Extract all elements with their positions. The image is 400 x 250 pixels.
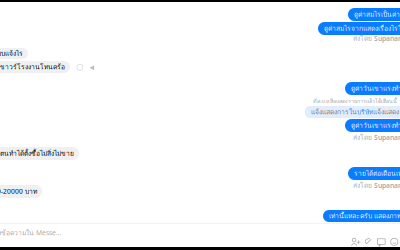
button[interactable]: ทำไปต่อตนทำได้ตั้งซื้อไม่สิ่งไม่ขาย — [0, 147, 79, 160]
button[interactable]: Reply — [87, 64, 95, 71]
staticText: ส่งข้อความใน Messenger… — [0, 228, 64, 238]
staticText: แจ้งแสดง — [373, 107, 399, 117]
staticText: Supanan Watta — [374, 181, 400, 190]
button[interactable]: 7000-20000 บาท — [0, 185, 42, 198]
staticText: ทำไปต่อตนทำได้ตั้งซื้อไม่สิ่งไม่ขาย — [0, 148, 74, 159]
staticText: 7000-20000 บาท — [0, 186, 37, 197]
staticText: ส่งโดย — [353, 132, 372, 143]
button[interactable]: Emoji — [389, 237, 399, 247]
button[interactable]: ดูค่าวันเขาแรงทำขอ — [345, 119, 400, 132]
button[interactable]: Add person — [350, 237, 360, 247]
button[interactable]: Attach file — [363, 237, 373, 247]
staticText: ดูค่าวันเขาแรงทำขอ — [351, 83, 400, 94]
button[interactable]: วันนี้แลกสาขาวร์โรงงานโทนคร้อ — [0, 61, 70, 73]
button[interactable]: แจ้งแสดงการ — [305, 106, 400, 118]
button[interactable]: รายได้ต่อเดือนเท่าไร — [348, 167, 400, 180]
button[interactable]: ต้นแบบแจ้งไร — [0, 48, 28, 59]
button[interactable]: ดูค่าวันเขาแรงทำขอ — [345, 82, 400, 95]
staticText: ส่งโดย — [353, 33, 372, 44]
button[interactable]: ดูค่าสมไรเป็นค่าจ้ — [348, 8, 400, 21]
staticText: แจ้งแสดงการ — [311, 107, 349, 117]
button[interactable]: เท่านี้แหละครับ แสดงภาพแสดงที่มาในต้อง — [323, 210, 400, 222]
staticText: เท่านี้แหละครับ แสดงภาพแสดงที่มาในต้อง — [329, 211, 400, 221]
button[interactable]: React — [76, 64, 83, 71]
button[interactable]: Stickers — [376, 237, 386, 247]
staticText: ส่งโดย — [353, 180, 372, 191]
button[interactable]: ดูค่าสมไรจากแสดงเรื่องไรในแสดง — [318, 22, 400, 35]
staticText: Supanan Watta — [374, 133, 400, 142]
staticText: รายได้ต่อเดือนเท่าไร — [354, 168, 400, 179]
staticText: ดูค่าวันเขาแรงทำขอ — [351, 120, 400, 131]
staticText: วันนี้แลกสาขาวร์โรงงานโทนคร้อ — [0, 62, 65, 72]
staticText: ต้นแบบแจ้งไร — [0, 48, 23, 59]
staticText: ที่คงเหลือแสดงรายการแล้วได้เดือนนี้ — [313, 97, 397, 105]
button[interactable]: ส่งข้อความใน Messenger… — [0, 228, 64, 238]
staticText: ดูค่าสมไรเป็นค่าจ้ — [354, 9, 400, 20]
staticText: Supanan Watta — [374, 34, 400, 43]
staticText: ในบริษัท — [349, 107, 373, 117]
staticText: ดูค่าสมไรจากแสดงเรื่องไรในแสดง — [324, 23, 400, 34]
